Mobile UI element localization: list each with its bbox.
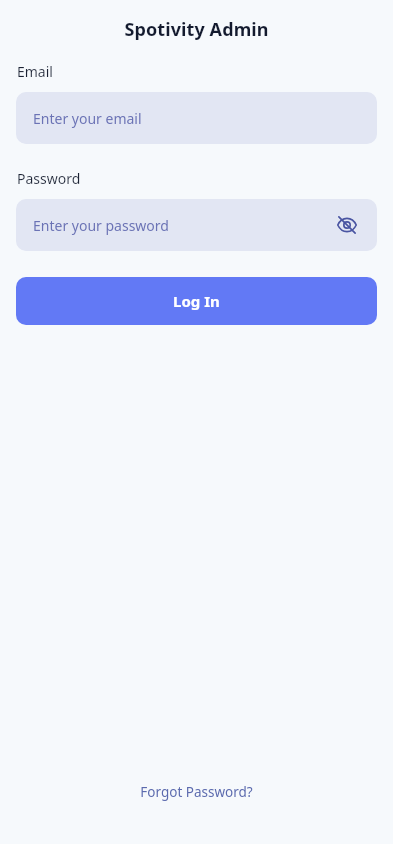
staticText: Email [17, 62, 53, 81]
button[interactable]: Show password [335, 213, 359, 237]
button[interactable]: Enter your password [16, 199, 377, 251]
staticText: Password [17, 169, 81, 188]
staticText: Enter your password [33, 216, 169, 235]
button[interactable]: Log In [16, 277, 377, 325]
staticText: Log In [173, 291, 220, 311]
button[interactable]: Forgot Password? [0, 777, 393, 807]
staticText: Enter your email [33, 109, 142, 128]
staticText: Forgot Password? [140, 783, 253, 801]
button[interactable]: Enter your email [16, 92, 377, 144]
staticText: Spotivity Admin [0, 17, 393, 42]
